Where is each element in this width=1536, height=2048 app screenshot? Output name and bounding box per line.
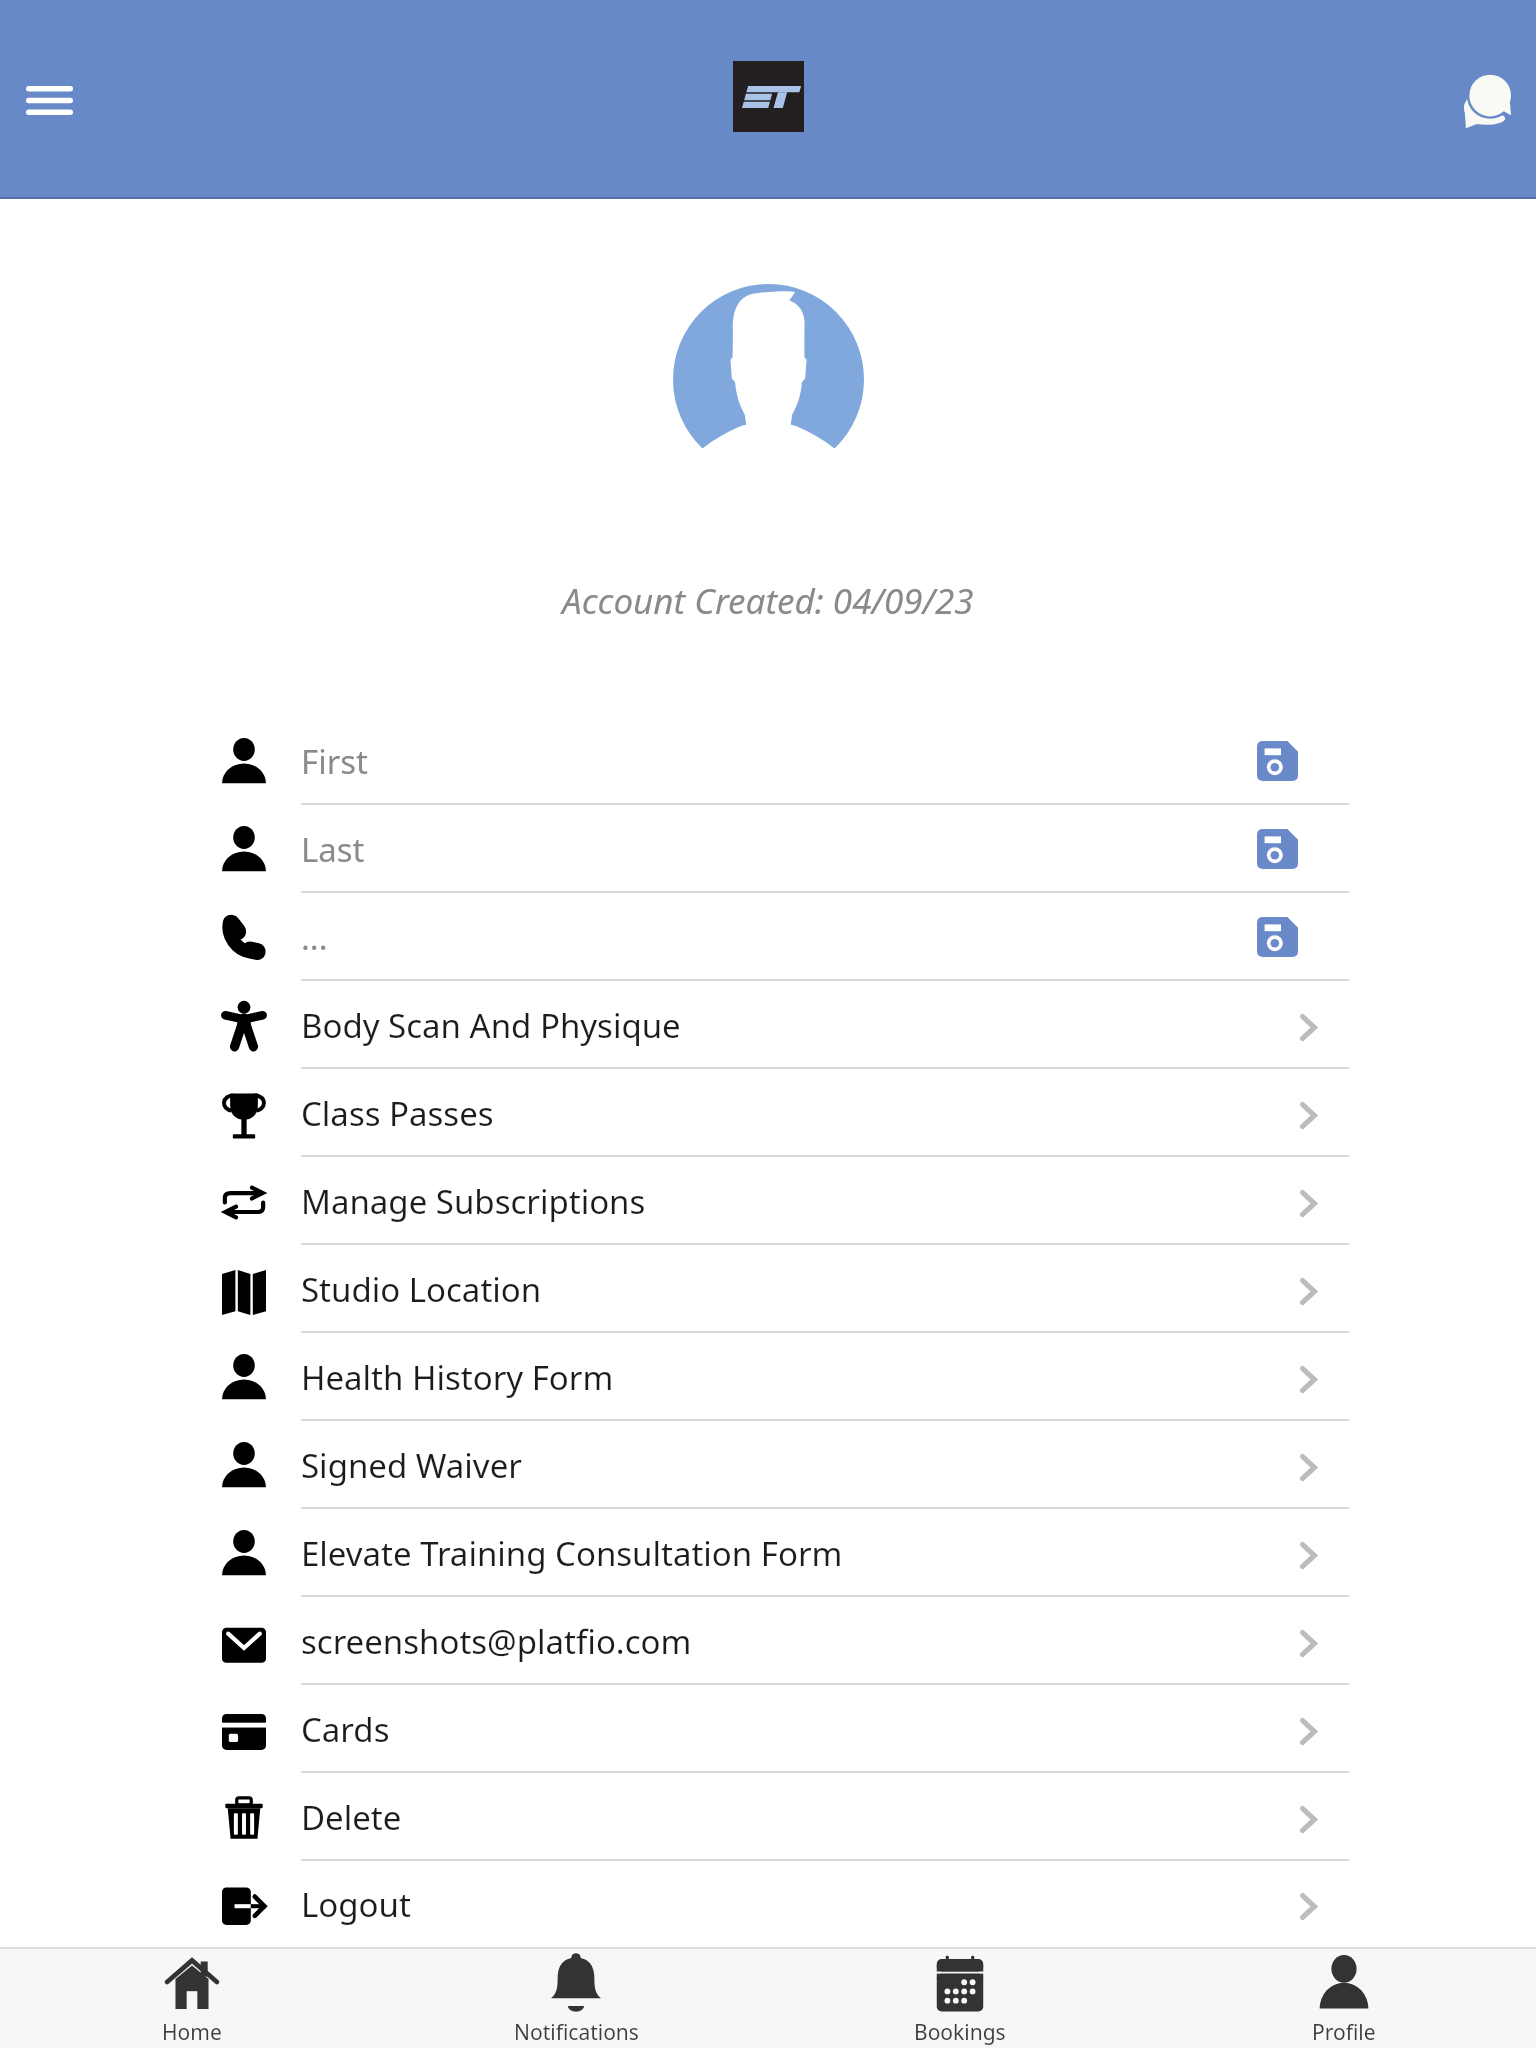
staticText: screenshots@platfio.com (301, 1619, 692, 1664)
button[interactable]: Notifications (384, 1949, 768, 2048)
staticText: Class Passes (301, 1091, 494, 1136)
button[interactable]: Last (0, 805, 1536, 893)
button[interactable]: screenshots@platfio.com (0, 1597, 1536, 1685)
staticText: Last (301, 827, 365, 872)
staticText: Account Created: 04/09/23 (562, 577, 974, 625)
staticText: Elevate Training Consultation Form (301, 1531, 843, 1576)
staticText: Bookings (914, 2018, 1006, 2047)
button[interactable]: ... (0, 893, 1536, 981)
button[interactable]: First (0, 717, 1536, 805)
button[interactable]: Menu (7, 58, 91, 142)
button[interactable]: Class Passes (0, 1069, 1536, 1157)
staticText: Notifications (514, 2018, 639, 2047)
button[interactable]: Save (1242, 733, 1298, 789)
button[interactable]: Studio Location (0, 1245, 1536, 1333)
button[interactable]: Save (1242, 821, 1298, 877)
button[interactable]: Signed Waiver (0, 1421, 1536, 1509)
button[interactable]: Home (0, 1949, 384, 2048)
button[interactable]: Save (1242, 909, 1298, 965)
staticText: Profile (1312, 2018, 1376, 2047)
staticText: Home (162, 2018, 222, 2047)
button[interactable]: Elevate Training Consultation Form (0, 1509, 1536, 1597)
button[interactable]: Cards (0, 1685, 1536, 1773)
button[interactable]: Bookings (768, 1949, 1152, 2048)
staticText: Health History Form (301, 1355, 614, 1400)
button[interactable]: Profile (1152, 1949, 1536, 2048)
staticText: First (301, 739, 368, 784)
staticText: Manage Subscriptions (301, 1179, 646, 1224)
button[interactable]: Elevate Training home (733, 61, 804, 132)
button[interactable]: Chat (1444, 58, 1528, 142)
button[interactable]: Delete (0, 1773, 1536, 1861)
staticText: Studio Location (301, 1267, 542, 1312)
button[interactable]: Manage Subscriptions (0, 1157, 1536, 1245)
staticText: Body Scan And Physique (301, 1003, 681, 1048)
button[interactable]: Health History Form (0, 1333, 1536, 1421)
staticText: Cards (301, 1707, 390, 1752)
button[interactable]: Logout (0, 1861, 1536, 1947)
staticText: Delete (301, 1795, 402, 1840)
button[interactable]: Body Scan And Physique (0, 981, 1536, 1069)
staticText: Logout (301, 1882, 411, 1927)
staticText: Signed Waiver (301, 1443, 522, 1488)
staticText: ... (301, 915, 328, 960)
